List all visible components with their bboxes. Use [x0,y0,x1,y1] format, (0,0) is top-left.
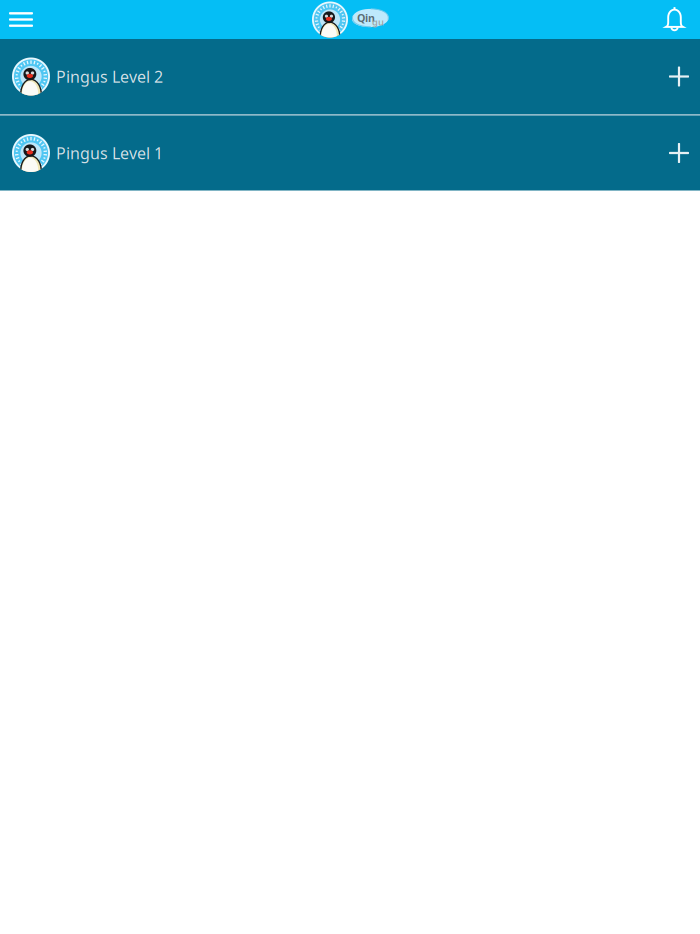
staticText: Qin [357,11,375,25]
staticText: gu [372,16,384,28]
button[interactable]: Add Pingus Level 1 [657,131,700,175]
staticText: Pingus Level 2 [56,66,163,87]
staticText: Pingus Level 1 [56,142,163,164]
button[interactable]: Pingus Level 2 [0,39,700,114]
button[interactable]: Pingus Level 1 [0,115,700,190]
button[interactable]: Add Pingus Level 2 [657,54,700,98]
button[interactable]: Menu [0,0,66,39]
button[interactable]: Notifications [629,0,700,39]
